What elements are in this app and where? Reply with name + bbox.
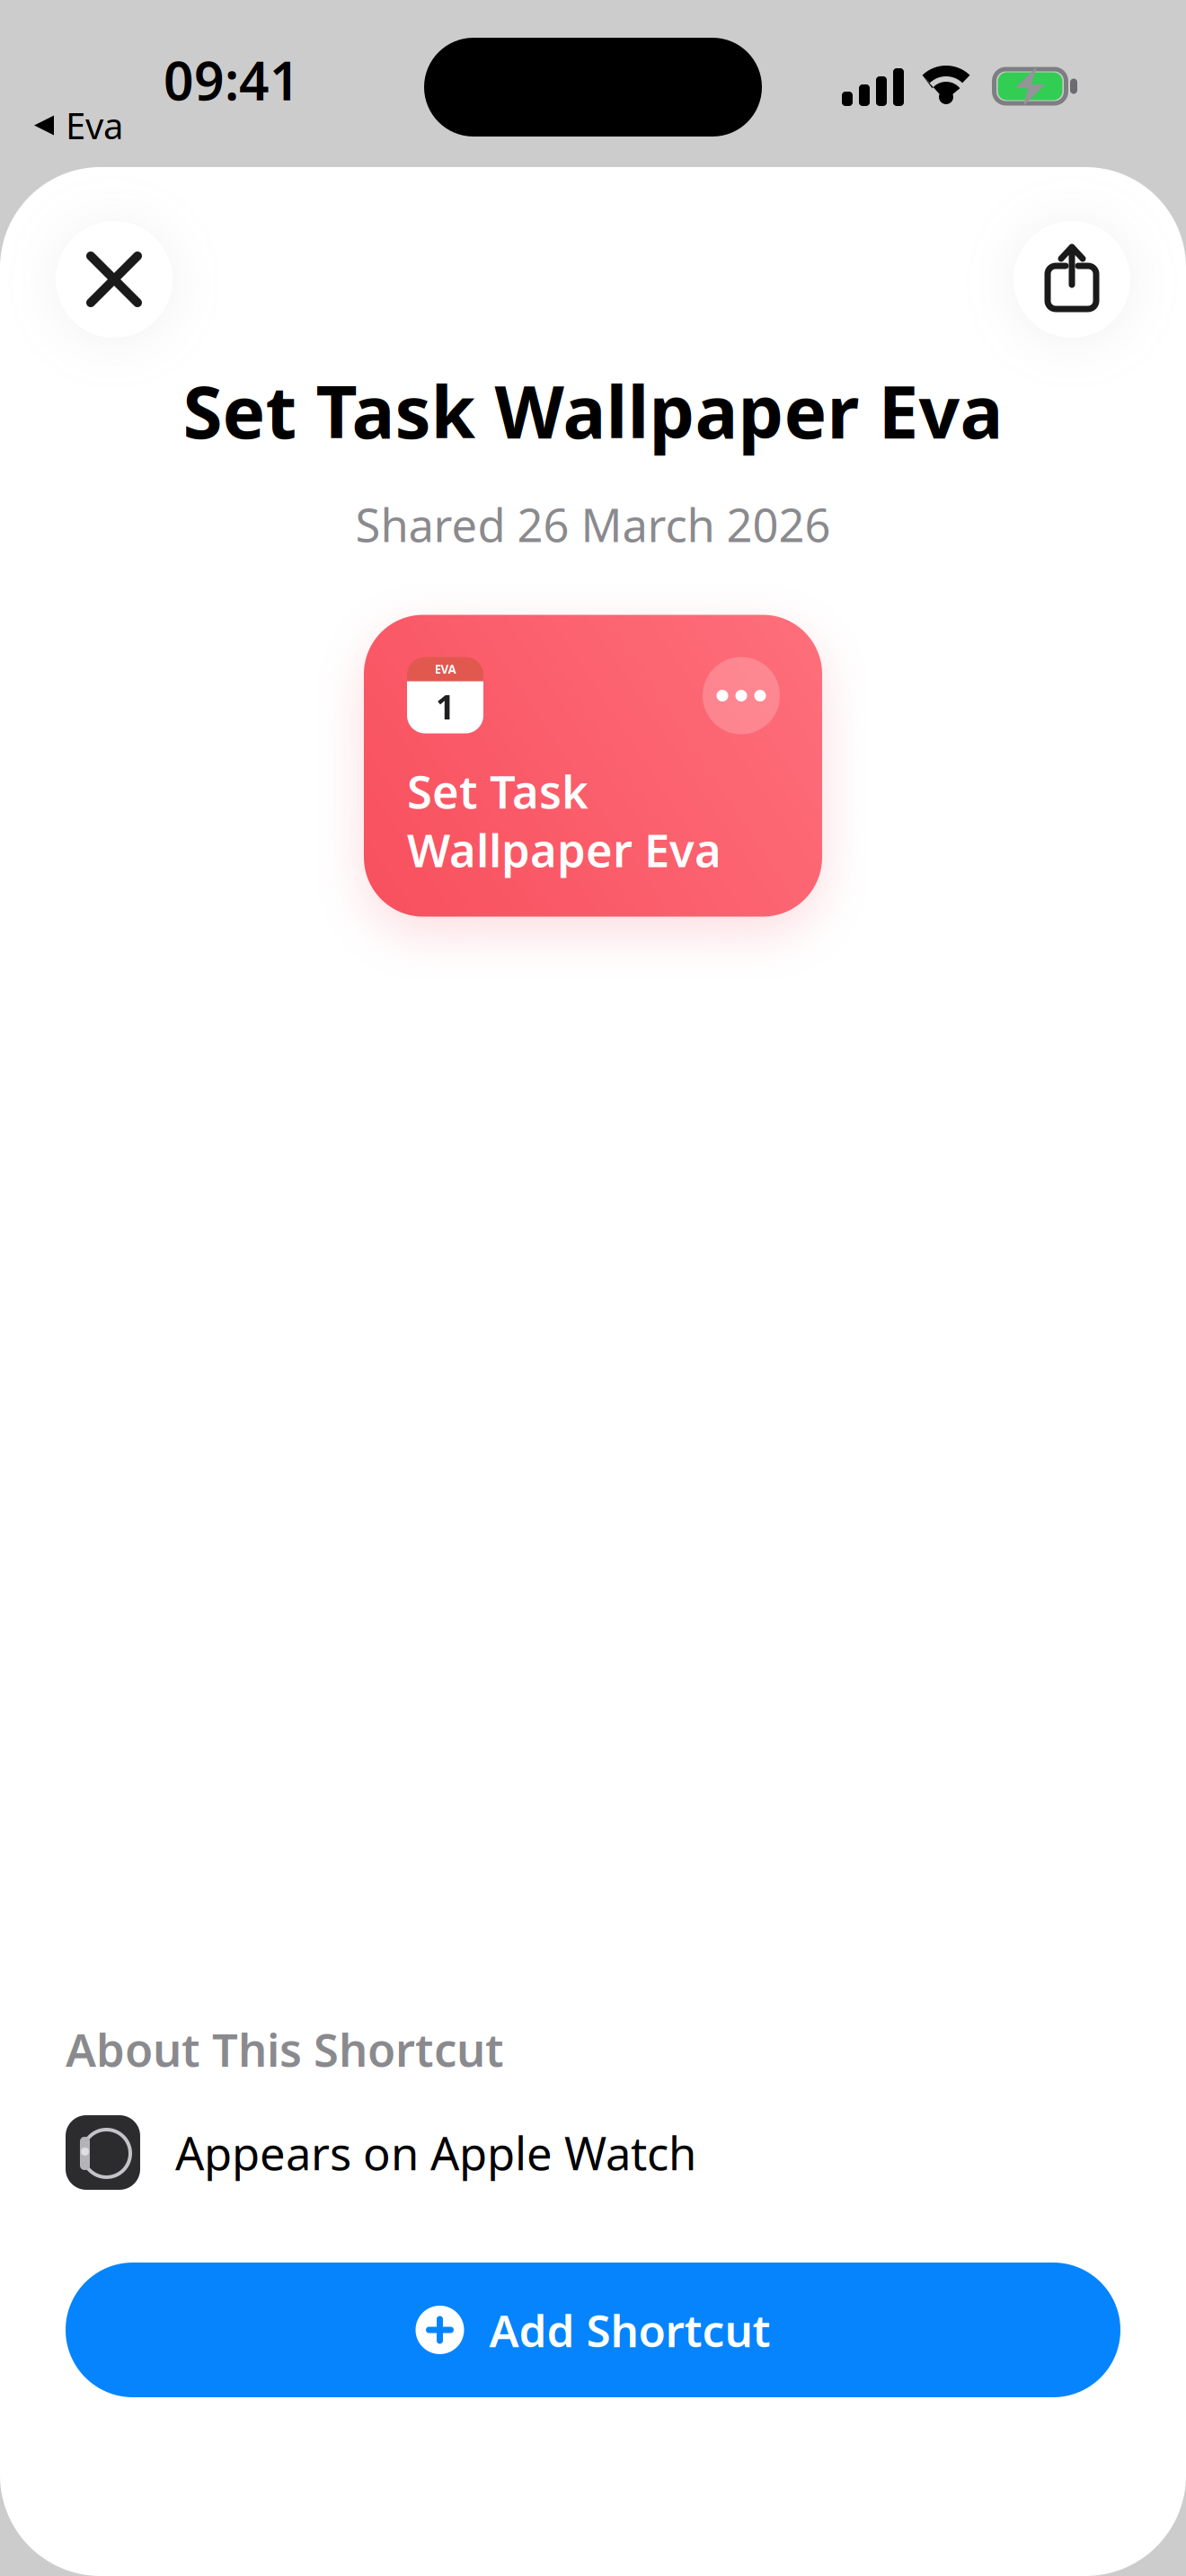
staticText: Eva xyxy=(66,101,123,149)
staticText: 1 xyxy=(436,684,455,729)
button[interactable]: Close xyxy=(56,221,173,338)
button[interactable]: More options xyxy=(703,657,780,734)
button[interactable]: Share xyxy=(1013,221,1130,338)
staticText: Add Shortcut xyxy=(489,2300,770,2359)
button[interactable]: Add Shortcut xyxy=(66,2263,1120,2397)
staticText: EVA xyxy=(434,661,456,677)
staticText: Appears on Apple Watch xyxy=(175,2122,696,2183)
staticText: Set Task Wallpaper Eva xyxy=(407,761,721,880)
staticText: About This Shortcut xyxy=(66,2019,504,2079)
staticText: Shared 26 March 2026 xyxy=(355,494,831,555)
staticText: 09:41 xyxy=(164,45,300,115)
staticText: Set Task Wallpaper Eva xyxy=(183,363,1003,458)
